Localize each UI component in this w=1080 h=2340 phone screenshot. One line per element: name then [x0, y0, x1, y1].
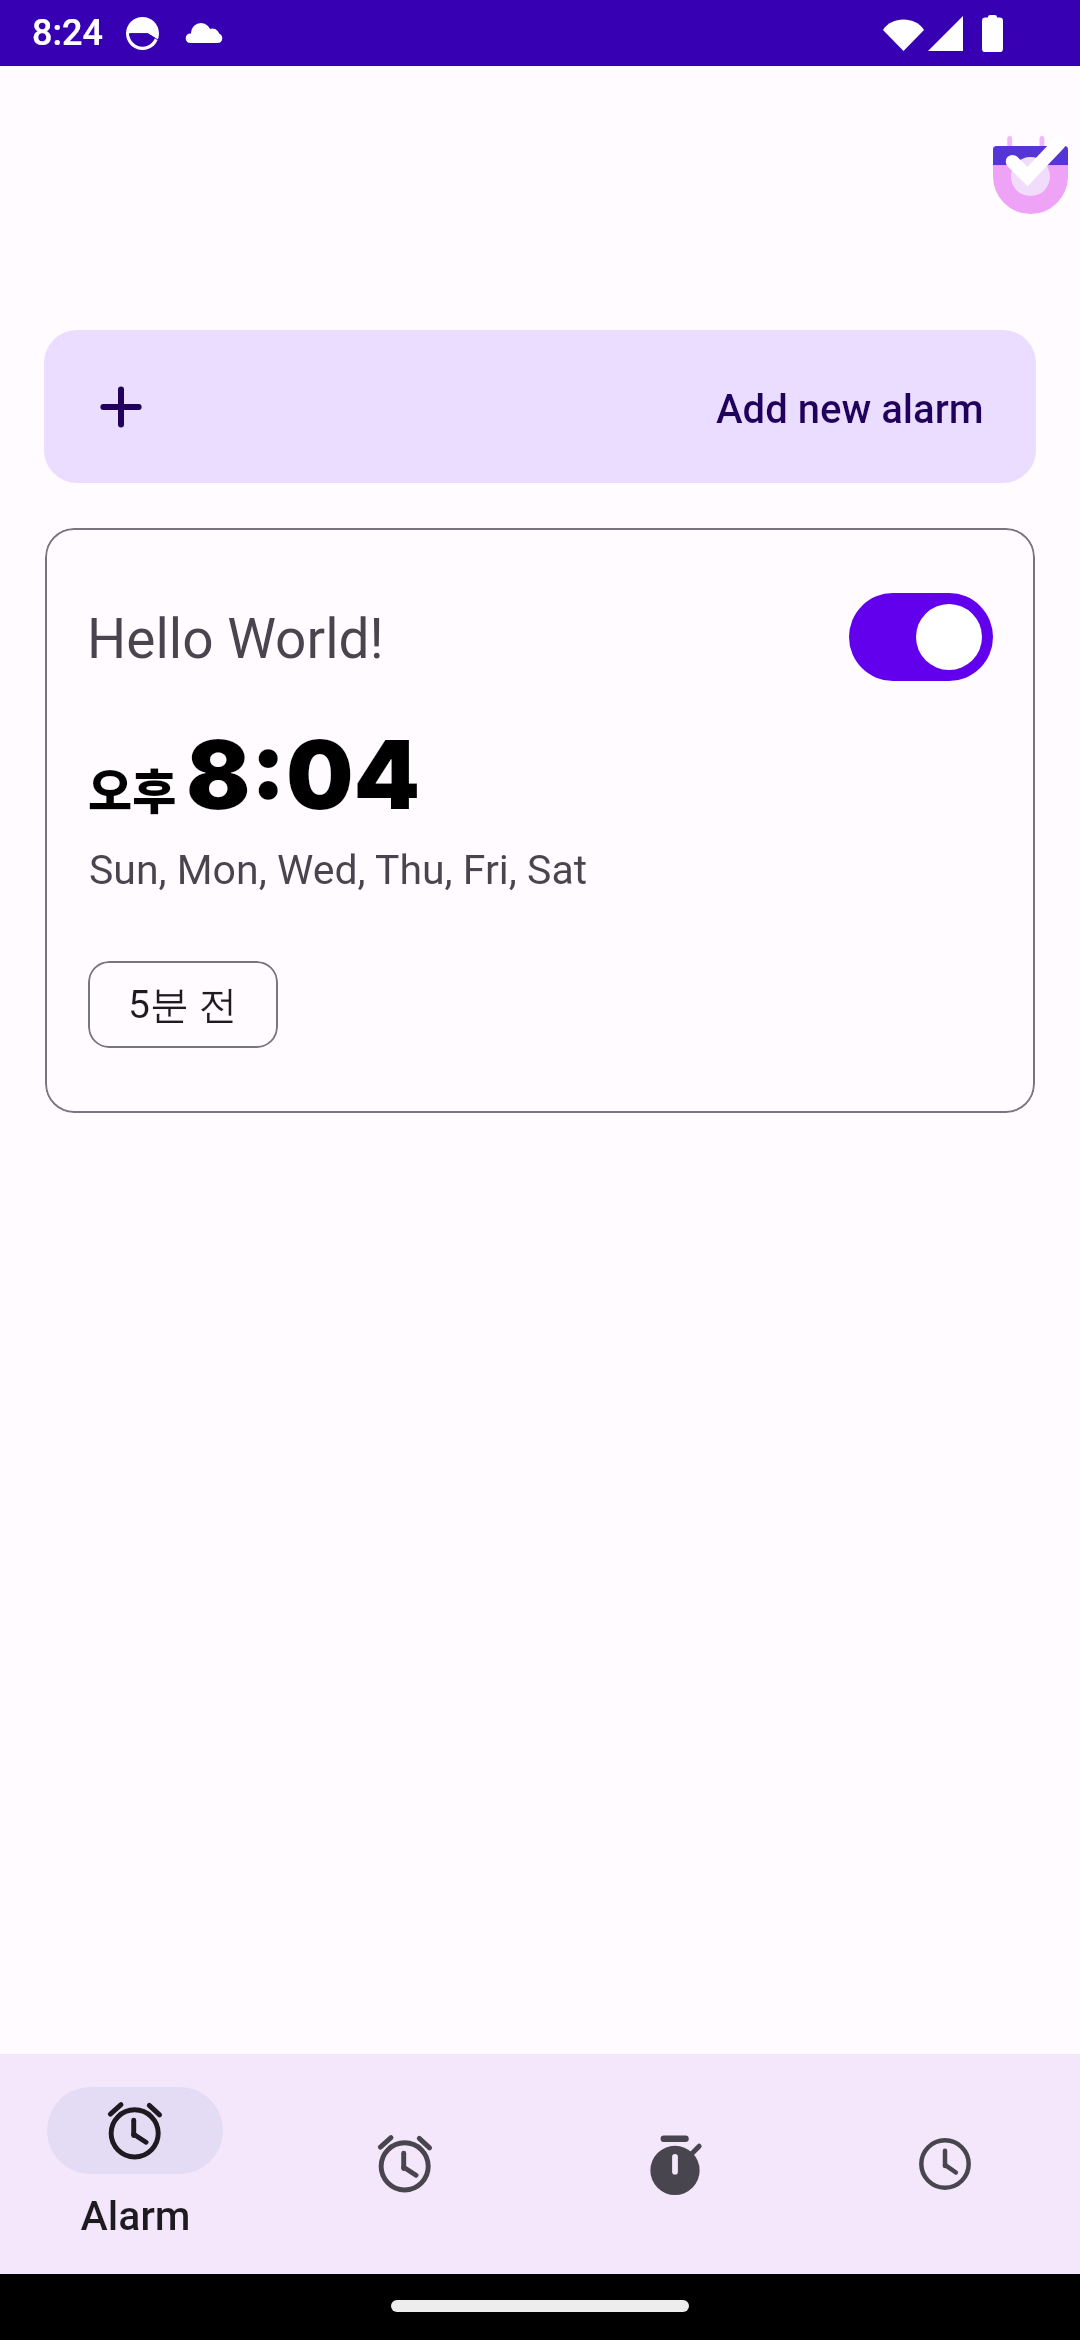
staticText: Alarm — [80, 2192, 191, 2240]
staticText: 8:24 — [32, 12, 103, 54]
staticText: 8:04 — [186, 717, 421, 832]
staticText: 오후 — [88, 753, 177, 823]
button[interactable]: Alarm — [0, 2054, 270, 2274]
other: Tasks — [993, 136, 1080, 218]
button[interactable]: Hello World! — [45, 528, 1035, 1113]
staticText: Add new alarm — [716, 386, 984, 433]
staticText: Sun, Mon, Wed, Thu, Fri, Sat — [89, 846, 588, 894]
button[interactable]: Stopwatch tab — [810, 2054, 1080, 2274]
button[interactable]: 5분 전 — [88, 961, 278, 1048]
button[interactable]: Alarms tab — [270, 2054, 540, 2274]
staticText: 5분 전 — [128, 980, 238, 1029]
staticText: Hello World! — [87, 607, 384, 671]
button[interactable]: Timer tab — [540, 2054, 810, 2274]
button[interactable]: Alarm enabled toggle — [849, 593, 993, 681]
button[interactable]: Add new alarm — [44, 330, 1036, 483]
